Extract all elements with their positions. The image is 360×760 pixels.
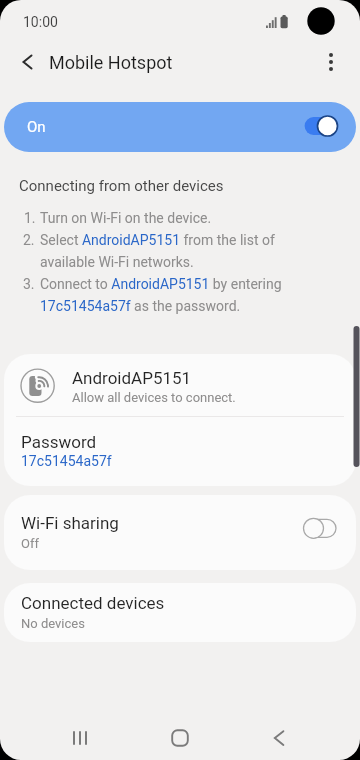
button[interactable] (318, 48, 344, 76)
button[interactable] (162, 722, 198, 754)
staticText: Off (21, 536, 39, 551)
staticText: AndroidAP5151 (72, 368, 192, 388)
staticText: 10:00 (23, 14, 58, 30)
button[interactable] (10, 46, 42, 78)
staticText: Connected devices (21, 593, 165, 613)
staticText: Turn on Wi-Fi on the device. (40, 210, 212, 226)
staticText: Allow all devices to connect. (72, 390, 236, 405)
button[interactable]: On (4, 102, 356, 152)
staticText: Connect to AndroidAP5151 by entering (40, 276, 282, 292)
button[interactable] (4, 417, 356, 486)
staticText: Select AndroidAP5151 from the list of (40, 232, 275, 248)
button[interactable] (261, 722, 297, 754)
staticText: Wi-Fi sharing (21, 513, 119, 533)
staticText: 17c51454a57f as the password. (40, 298, 241, 314)
staticText: Connecting from other devices (19, 177, 224, 195)
staticText: No devices (21, 616, 85, 631)
staticText: 2. (23, 232, 35, 248)
button[interactable]: Wi-Fi sharing (4, 495, 356, 570)
button[interactable] (63, 722, 99, 754)
staticText: 3. (23, 276, 35, 292)
staticText: 17c51454a57f (21, 453, 112, 469)
staticText: Password (21, 432, 97, 452)
staticText: available Wi-Fi networks. (40, 254, 194, 270)
button[interactable]: Connected devices (4, 583, 356, 642)
staticText: 1. (24, 210, 36, 226)
staticText: Mobile Hotspot (49, 52, 173, 73)
staticText: On (27, 118, 46, 136)
button[interactable] (4, 354, 356, 417)
